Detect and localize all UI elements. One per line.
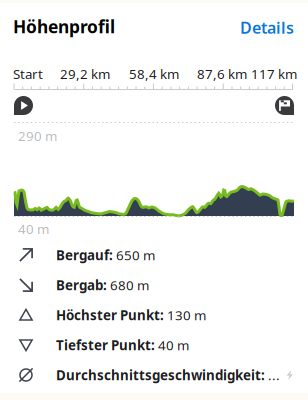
staticText: 40 m — [155, 336, 189, 354]
button[interactable]: Bergauf: — [0, 240, 308, 270]
button[interactable]: Durchschnittsgeschwindigkeit: — [0, 360, 308, 390]
staticText: 87,6 km — [197, 65, 247, 83]
staticText: Details — [240, 17, 294, 38]
staticText: Start — [13, 65, 43, 83]
staticText: Höhenprofil — [13, 15, 115, 38]
staticText: 58,4 km — [129, 65, 179, 83]
staticText: 290 m — [18, 127, 57, 145]
staticText: Durchschnittsgeschwindigkeit: — [56, 366, 265, 384]
staticText: 680 m — [107, 276, 149, 294]
staticText: ... — [265, 366, 280, 384]
button[interactable]: Details — [240, 17, 294, 38]
staticText: 650 m — [113, 246, 155, 264]
staticText: Tiefster Punkt: — [56, 336, 155, 354]
button[interactable]: Höchster Punkt: — [0, 300, 308, 330]
button[interactable]: Höhenprofil — [13, 15, 115, 38]
staticText: Höchster Punkt: — [56, 306, 164, 324]
staticText: 29,2 km — [60, 65, 110, 83]
staticText: 130 m — [164, 306, 206, 324]
button[interactable]: Bergab: — [0, 270, 308, 300]
staticText: 40 m — [18, 220, 49, 238]
staticText: Bergauf: — [56, 246, 113, 264]
staticText: Bergab: — [56, 276, 107, 294]
button[interactable]: Tiefster Punkt: — [0, 330, 308, 360]
staticText: 117 km — [251, 65, 297, 83]
